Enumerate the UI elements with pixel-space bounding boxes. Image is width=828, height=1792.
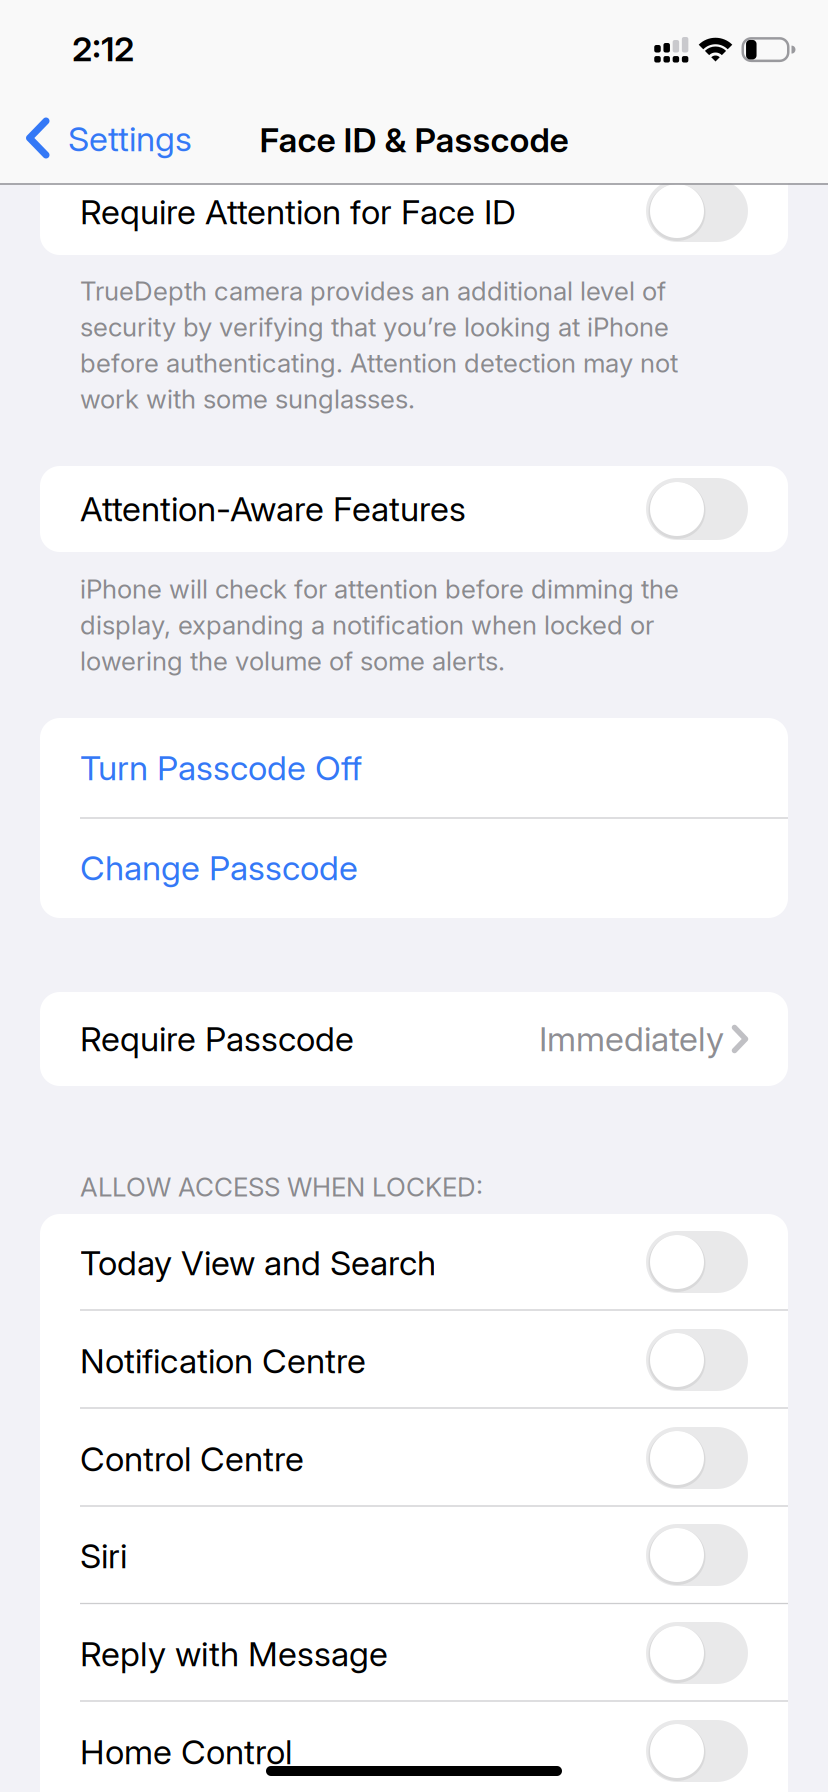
staticText: before authenticating. Attention detecti… [80,347,678,379]
staticText: Control Centre [80,1438,304,1479]
button[interactable]: Turn Passcode Off [40,718,788,818]
button[interactable]: Home Control [646,1720,748,1782]
button[interactable]: Siri [646,1524,748,1586]
button[interactable]: Today View and Search [646,1231,748,1293]
button[interactable]: Require Attention for Face ID [646,180,748,242]
staticText: Reply with Message [80,1633,388,1674]
staticText: display, expanding a notification when l… [80,609,654,641]
button[interactable]: Change Passcode [40,818,788,918]
staticText: Attention-Aware Features [80,488,466,529]
staticText: Settings [68,118,192,159]
button[interactable]: Attention-Aware Features [646,478,748,540]
staticText: Change Passcode [80,847,358,888]
staticText: Today View and Search [80,1242,436,1283]
staticText: TrueDepth camera provides an additional … [80,275,666,307]
staticText: Notification Centre [80,1340,366,1381]
staticText: Face ID & Passcode [259,119,568,160]
staticText: Require Attention for Face ID [80,191,516,232]
staticText: security by verifying that you’re lookin… [80,311,669,343]
staticText: Siri [80,1535,127,1576]
staticText: Require Passcode [80,1018,354,1059]
button[interactable]: Require Passcode [40,992,788,1086]
button[interactable]: Reply with Message [646,1622,748,1684]
staticText: Immediately [539,1018,724,1059]
staticText: Turn Passcode Off [80,747,362,788]
staticText: ALLOW ACCESS WHEN LOCKED: [80,1171,483,1203]
staticText: lowering the volume of some alerts. [80,645,505,677]
button[interactable]: Back [22,104,252,174]
staticText: Home Control [80,1731,292,1772]
staticText: 2:12 [72,28,134,69]
staticText: work with some sunglasses. [80,383,415,415]
button[interactable]: Control Centre [646,1427,748,1489]
staticText: iPhone will check for attention before d… [80,573,679,605]
button[interactable]: Notification Centre [646,1329,748,1391]
